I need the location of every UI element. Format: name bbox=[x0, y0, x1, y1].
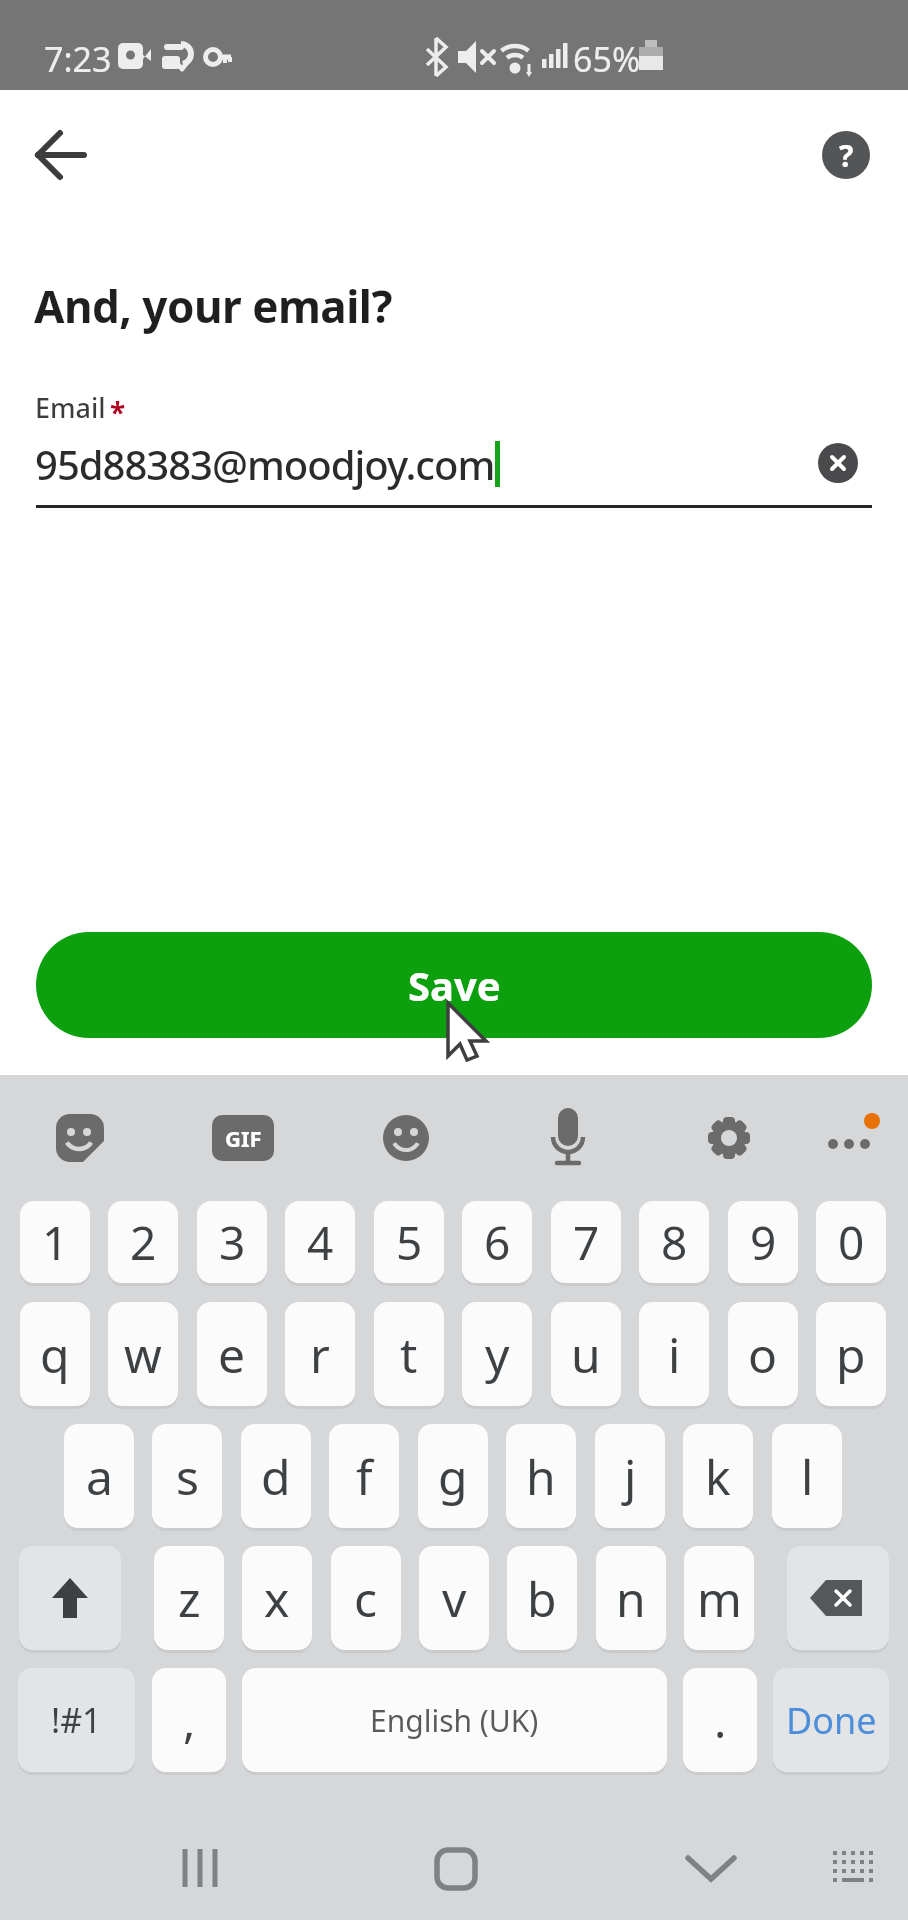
button[interactable]: Done bbox=[773, 1668, 889, 1772]
button[interactable]: 0 bbox=[816, 1201, 886, 1283]
staticText: f bbox=[356, 1444, 373, 1509]
staticText: English (UK) bbox=[370, 1700, 539, 1741]
button[interactable]: z bbox=[154, 1546, 224, 1650]
button[interactable]: t bbox=[374, 1302, 444, 1406]
button[interactable] bbox=[818, 1106, 888, 1166]
button[interactable]: f bbox=[329, 1424, 399, 1528]
button[interactable]: 3 bbox=[197, 1201, 267, 1283]
button[interactable] bbox=[820, 1830, 890, 1910]
button[interactable]: n bbox=[596, 1546, 666, 1650]
staticText: Done bbox=[786, 1696, 877, 1745]
staticText: 1 bbox=[42, 1211, 69, 1274]
staticText: 7 bbox=[573, 1211, 600, 1274]
button[interactable]: d bbox=[241, 1424, 311, 1528]
button[interactable]: m bbox=[684, 1546, 754, 1650]
button[interactable]: 2 bbox=[108, 1201, 178, 1283]
button[interactable]: u bbox=[551, 1302, 621, 1406]
staticText: 4 bbox=[307, 1211, 334, 1274]
staticText: p bbox=[836, 1322, 866, 1387]
staticText: t bbox=[400, 1322, 418, 1387]
button[interactable]: Save bbox=[36, 932, 872, 1038]
button[interactable]: , bbox=[152, 1668, 226, 1772]
button[interactable]: h bbox=[506, 1424, 576, 1528]
staticText: u bbox=[571, 1322, 601, 1387]
staticText: a bbox=[86, 1444, 113, 1509]
staticText: e bbox=[218, 1322, 246, 1387]
staticText: d bbox=[261, 1444, 291, 1509]
button[interactable]: p bbox=[816, 1302, 886, 1406]
button[interactable] bbox=[26, 120, 96, 190]
staticText: s bbox=[176, 1444, 199, 1509]
staticText: 2 bbox=[130, 1211, 157, 1274]
button[interactable]: 8 bbox=[639, 1201, 709, 1283]
button[interactable]: . bbox=[683, 1668, 757, 1772]
staticText: 0 bbox=[838, 1211, 865, 1274]
button[interactable]: 4 bbox=[285, 1201, 355, 1283]
staticText: 95d88383@moodjoy.com bbox=[35, 437, 495, 491]
button[interactable]: English (UK) bbox=[242, 1668, 667, 1772]
staticText: r bbox=[310, 1322, 330, 1387]
staticText: b bbox=[527, 1566, 557, 1631]
staticText: h bbox=[526, 1444, 556, 1509]
button[interactable]: r bbox=[285, 1302, 355, 1406]
button[interactable]: q bbox=[20, 1302, 90, 1406]
button[interactable] bbox=[382, 1114, 430, 1162]
button[interactable]: g bbox=[418, 1424, 488, 1528]
staticText: 5 bbox=[396, 1211, 423, 1274]
button[interactable]: 7 bbox=[551, 1201, 621, 1283]
staticText: k bbox=[705, 1444, 731, 1509]
button[interactable]: ? bbox=[822, 131, 870, 179]
staticText: o bbox=[748, 1322, 778, 1387]
staticText: c bbox=[354, 1566, 378, 1631]
staticText: !#1 bbox=[51, 1697, 102, 1743]
button[interactable]: 6 bbox=[462, 1201, 532, 1283]
staticText: z bbox=[178, 1566, 201, 1631]
button[interactable] bbox=[787, 1546, 889, 1650]
button[interactable]: v bbox=[419, 1546, 489, 1650]
staticText: g bbox=[438, 1444, 468, 1509]
staticText: Email bbox=[35, 389, 106, 426]
button[interactable] bbox=[544, 1106, 592, 1170]
staticText: ? bbox=[839, 135, 854, 176]
staticText: GIF bbox=[225, 1123, 262, 1153]
staticText: w bbox=[124, 1322, 162, 1387]
button[interactable]: 5 bbox=[374, 1201, 444, 1283]
staticText: j bbox=[624, 1444, 637, 1509]
button[interactable]: !#1 bbox=[18, 1668, 135, 1772]
button[interactable]: x bbox=[242, 1546, 312, 1650]
staticText: v bbox=[442, 1566, 467, 1631]
button[interactable]: s bbox=[152, 1424, 222, 1528]
button[interactable]: k bbox=[683, 1424, 753, 1528]
button[interactable]: o bbox=[728, 1302, 798, 1406]
staticText: 6 bbox=[484, 1211, 511, 1274]
staticText: x bbox=[264, 1566, 290, 1631]
button[interactable] bbox=[818, 443, 858, 483]
button[interactable]: GIF bbox=[212, 1115, 274, 1161]
button[interactable] bbox=[55, 1113, 105, 1163]
staticText: 8 bbox=[661, 1211, 688, 1274]
button[interactable]: e bbox=[197, 1302, 267, 1406]
button[interactable] bbox=[19, 1546, 121, 1650]
button[interactable]: a bbox=[64, 1424, 134, 1528]
button[interactable] bbox=[665, 1830, 755, 1910]
staticText: Save bbox=[408, 958, 501, 1012]
staticText: q bbox=[40, 1322, 70, 1387]
button[interactable] bbox=[160, 1830, 250, 1910]
staticText: l bbox=[801, 1444, 814, 1509]
button[interactable] bbox=[410, 1830, 500, 1910]
button[interactable]: w bbox=[108, 1302, 178, 1406]
button[interactable]: l bbox=[772, 1424, 842, 1528]
staticText: i bbox=[668, 1322, 681, 1387]
button[interactable]: 1 bbox=[20, 1201, 90, 1283]
button[interactable]: b bbox=[507, 1546, 577, 1650]
staticText: 9 bbox=[750, 1211, 777, 1274]
button[interactable] bbox=[705, 1114, 753, 1162]
staticText: 65% bbox=[573, 36, 641, 82]
button[interactable]: j bbox=[595, 1424, 665, 1528]
button[interactable]: y bbox=[462, 1302, 532, 1406]
button[interactable]: i bbox=[639, 1302, 709, 1406]
staticText: m bbox=[697, 1566, 742, 1631]
button[interactable]: 9 bbox=[728, 1201, 798, 1283]
staticText: . bbox=[714, 1689, 727, 1752]
button[interactable]: c bbox=[331, 1546, 401, 1650]
